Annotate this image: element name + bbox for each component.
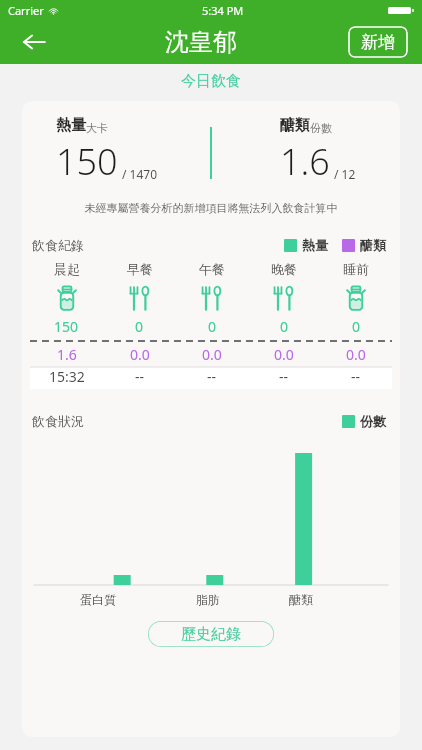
button[interactable]: 新增 (348, 26, 408, 58)
staticText: 0.0 (346, 345, 366, 364)
staticText: -- (135, 367, 145, 386)
staticText: 0 (352, 317, 361, 336)
button[interactable]: Back (14, 22, 54, 62)
staticText: 午餐 (199, 261, 225, 277)
button[interactable]: 醣類 (342, 237, 386, 253)
staticText: / 12 (334, 166, 356, 182)
staticText: 醣類 (280, 116, 310, 135)
staticText: 1.6 (280, 137, 330, 186)
staticText: 份數 (310, 121, 332, 135)
staticText: 熱量 (56, 116, 86, 135)
staticText: 0 (208, 317, 217, 336)
button[interactable]: 熱量 (284, 237, 328, 253)
staticText: 未經專屬營養分析的新增項目將無法列入飲食計算中 (22, 201, 400, 215)
staticText: 1.6 (57, 345, 77, 364)
staticText: 0 (135, 317, 144, 336)
staticText: 飲食狀況 (32, 413, 84, 429)
staticText: 0 (280, 317, 289, 336)
staticText: 5:34 PM (202, 3, 244, 18)
staticText: 今日飲食 (0, 72, 422, 91)
staticText: 醣類 (360, 237, 386, 253)
button[interactable]: 早餐 (123, 281, 157, 315)
staticText: 蛋白質 (80, 592, 116, 607)
staticText: 150 (54, 317, 79, 336)
staticText: 份數 (360, 413, 386, 429)
button[interactable]: 晨起 (50, 281, 84, 315)
staticText: 0.0 (202, 345, 222, 364)
button[interactable]: 睡前 (339, 281, 373, 315)
staticText: 晚餐 (271, 261, 297, 277)
staticText: 0.0 (274, 345, 294, 364)
staticText: 沈皇郁 (165, 27, 237, 57)
staticText: 飲食紀錄 (32, 237, 84, 253)
staticText: 熱量 (302, 237, 328, 253)
staticText: 大卡 (86, 121, 108, 135)
staticText: 早餐 (127, 261, 153, 277)
staticText: 歷史紀錄 (181, 625, 241, 644)
button[interactable]: 午餐 (195, 281, 229, 315)
staticText: -- (351, 367, 361, 386)
staticText: 晨起 (54, 261, 80, 277)
staticText: 新增 (361, 32, 395, 53)
staticText: -- (207, 367, 217, 386)
button[interactable]: 晚餐 (267, 281, 301, 315)
button[interactable]: 份數 (342, 413, 386, 429)
staticText: Carrier (8, 3, 44, 18)
staticText: / 1470 (122, 166, 158, 182)
button[interactable]: 歷史紀錄 (148, 621, 274, 647)
staticText: 脂肪 (196, 592, 220, 607)
staticText: 15:32 (49, 367, 85, 386)
staticText: -- (279, 367, 289, 386)
staticText: 150 (56, 137, 118, 186)
staticText: 醣類 (289, 592, 313, 607)
staticText: 睡前 (343, 261, 369, 277)
staticText: 0.0 (130, 345, 150, 364)
